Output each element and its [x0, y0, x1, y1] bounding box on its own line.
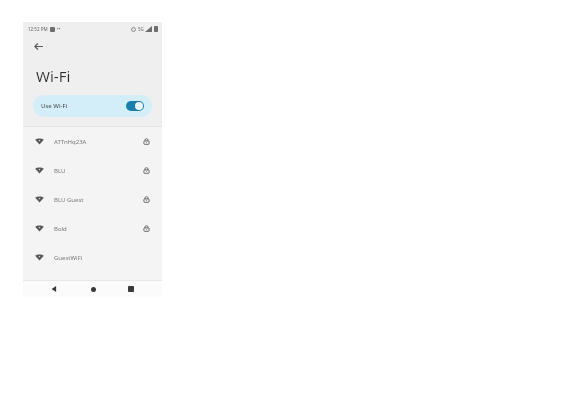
staticText: BLU — [54, 167, 66, 175]
staticText: Wi-Fi — [36, 66, 71, 86]
staticText: BLU Guest — [54, 196, 84, 204]
staticText: •• — [57, 26, 61, 32]
button[interactable]: Back — [31, 39, 45, 53]
button[interactable]: Back — [46, 281, 62, 297]
button[interactable]: BLU — [23, 156, 162, 185]
button[interactable]: Recent apps — [123, 281, 139, 297]
staticText: 12:52 PM — [28, 26, 48, 32]
staticText: Bold — [54, 225, 67, 233]
staticText: ATTnHq23A — [54, 138, 87, 146]
staticText: 5G — [138, 26, 144, 32]
button[interactable]: Bold — [23, 214, 162, 243]
staticText: Use Wi-Fi — [41, 102, 68, 110]
staticText: GuestWiFi — [54, 254, 83, 262]
button[interactable]: Home — [85, 281, 101, 297]
button[interactable]: GuestWiFi — [23, 243, 162, 272]
button[interactable]: ATTnHq23A — [23, 127, 162, 156]
button[interactable]: BLU Guest — [23, 185, 162, 214]
button[interactable]: Use Wi-Fi — [33, 95, 152, 117]
